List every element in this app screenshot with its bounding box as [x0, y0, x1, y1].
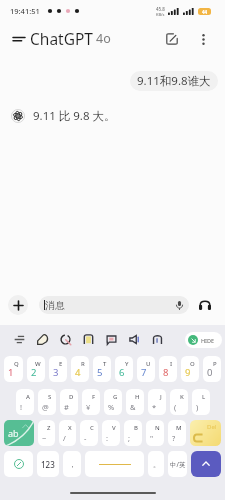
staticText: 。: [153, 460, 160, 469]
staticText: B: [134, 424, 138, 432]
button[interactable]: Q: [4, 356, 23, 382]
button[interactable]: U: [137, 356, 155, 382]
staticText: A: [26, 393, 30, 401]
staticText: D: [69, 393, 74, 401]
button[interactable]: G: [104, 389, 122, 415]
staticText: E: [59, 360, 63, 368]
staticText: 44: [202, 9, 208, 15]
staticText: 0: [207, 366, 213, 379]
button[interactable]: Shift: [4, 420, 34, 446]
button[interactable]: ChatGPT: [30, 24, 111, 53]
button[interactable]: Text format: [8, 328, 31, 351]
button[interactable]: T: [93, 356, 111, 382]
button[interactable]: 中/英: [168, 451, 187, 477]
staticText: 9: [185, 366, 191, 379]
staticText: C: [90, 424, 94, 432]
button[interactable]: New chat: [161, 28, 183, 50]
staticText: O: [190, 360, 195, 368]
button[interactable]: J: [148, 389, 166, 415]
staticText: 5: [97, 366, 103, 379]
button[interactable]: Undo: [54, 328, 77, 351]
button[interactable]: 。: [148, 451, 164, 477]
button[interactable]: Menu: [9, 29, 29, 49]
button[interactable]: W: [27, 356, 45, 382]
button[interactable]: HIDE: [185, 332, 222, 348]
button[interactable]: Space: [85, 451, 144, 477]
staticText: P: [213, 360, 217, 368]
staticText: W: [35, 360, 41, 368]
button[interactable]: P: [203, 356, 221, 382]
staticText: ;: [128, 433, 131, 443]
staticText: G: [113, 393, 118, 401]
button[interactable]: A: [16, 389, 34, 415]
button[interactable]: E: [49, 356, 67, 382]
staticText: (: [174, 402, 177, 412]
staticText: 1: [8, 366, 14, 379]
button[interactable]: ，: [63, 451, 81, 477]
button[interactable]: 9.11和9.8谁大: [130, 71, 218, 91]
staticText: S: [48, 393, 52, 401]
staticText: 中/英: [170, 460, 186, 469]
button[interactable]: Emoji: [4, 451, 33, 477]
staticText: 4: [75, 366, 81, 379]
staticText: 消息: [45, 299, 65, 312]
button[interactable]: L: [192, 389, 210, 415]
button[interactable]: N: [146, 420, 164, 446]
button[interactable]: V: [102, 420, 120, 446]
button[interactable]: Voice mode: [195, 295, 215, 315]
button[interactable]: Translate: [100, 328, 123, 351]
button[interactable]: Theme: [146, 328, 169, 351]
staticText: /: [63, 433, 66, 443]
staticText: 2: [31, 366, 37, 379]
staticText: 7: [141, 366, 147, 379]
staticText: 123: [41, 459, 55, 470]
staticText: N: [155, 424, 160, 432]
button[interactable]: O: [181, 356, 199, 382]
staticText: 45.8: [156, 6, 165, 12]
button[interactable]: Eraser: [31, 328, 54, 351]
button[interactable]: C: [80, 420, 98, 446]
button[interactable]: R: [71, 356, 89, 382]
staticText: 9.11 比 9.8 大。: [33, 108, 116, 124]
staticText: @: [42, 402, 49, 412]
staticText: ，: [69, 460, 76, 469]
button[interactable]: Y: [115, 356, 133, 382]
staticText: L: [202, 393, 206, 401]
button[interactable]: More options: [193, 29, 213, 49]
button[interactable]: 消息: [39, 296, 189, 314]
staticText: ": [150, 433, 154, 443]
button[interactable]: B: [124, 420, 142, 446]
button[interactable]: Add attachment: [8, 295, 28, 315]
button[interactable]: D: [60, 389, 78, 415]
button[interactable]: Enter: [191, 451, 221, 477]
staticText: K: [180, 393, 184, 401]
staticText: !: [20, 402, 23, 412]
button[interactable]: M: [168, 420, 186, 446]
button[interactable]: Sound: [123, 328, 146, 351]
staticText: ChatGPT: [30, 28, 93, 49]
staticText: T: [103, 360, 107, 368]
staticText: Q: [14, 360, 19, 368]
button[interactable]: I: [159, 356, 177, 382]
staticText: Z: [47, 424, 51, 432]
staticText: ~: [42, 433, 47, 443]
button[interactable]: Clipboard: [77, 328, 100, 351]
button[interactable]: 123: [37, 451, 59, 477]
button[interactable]: S: [38, 389, 56, 415]
button[interactable]: F: [82, 389, 100, 415]
button[interactable]: Delete: [190, 420, 221, 446]
button[interactable]: Z: [38, 420, 55, 446]
staticText: H: [135, 393, 140, 401]
staticText: Y: [125, 360, 129, 368]
staticText: *: [152, 402, 157, 412]
staticText: 9.11和9.8谁大: [137, 73, 211, 89]
staticText: ?: [172, 433, 176, 443]
staticText: V: [112, 424, 116, 432]
staticText: &: [130, 402, 136, 412]
button[interactable]: X: [59, 420, 76, 446]
button[interactable]: K: [170, 389, 188, 415]
staticText: :: [106, 433, 109, 443]
button[interactable]: H: [126, 389, 144, 415]
staticText: 6: [119, 366, 125, 379]
staticText: X: [68, 424, 72, 432]
